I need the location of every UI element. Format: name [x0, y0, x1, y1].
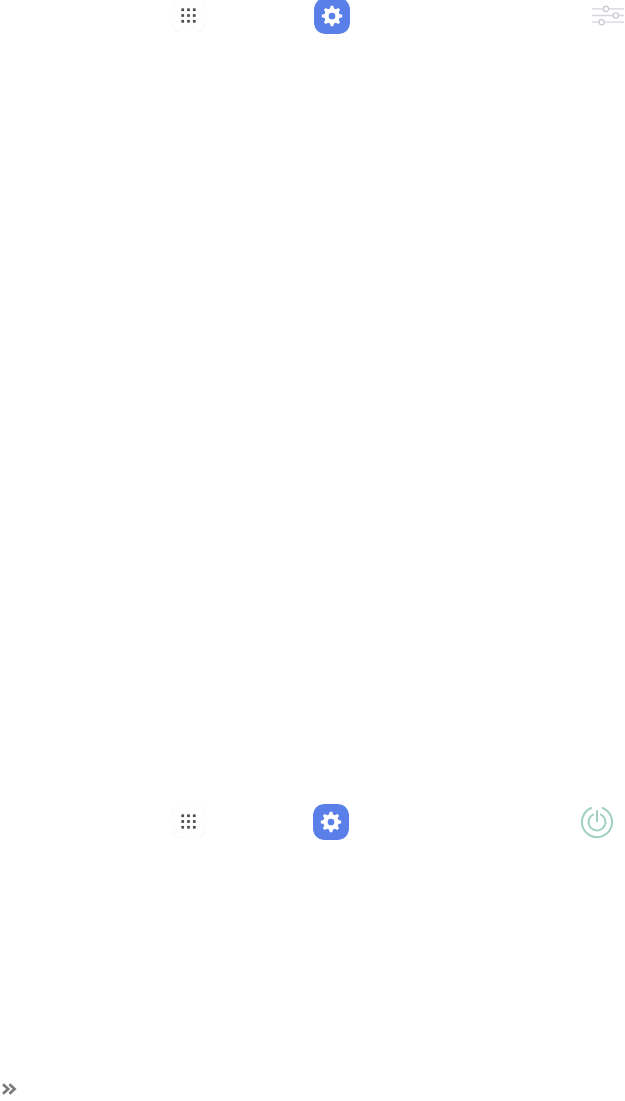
button[interactable]: All apps — [172, 0, 205, 32]
button[interactable]: Settings — [314, 0, 350, 34]
button[interactable]: Power — [579, 804, 615, 840]
button[interactable]: Settings — [313, 804, 349, 840]
button[interactable]: All apps — [172, 805, 205, 838]
button[interactable]: Expand — [1, 1080, 21, 1098]
button[interactable]: Tune — [592, 3, 624, 28]
